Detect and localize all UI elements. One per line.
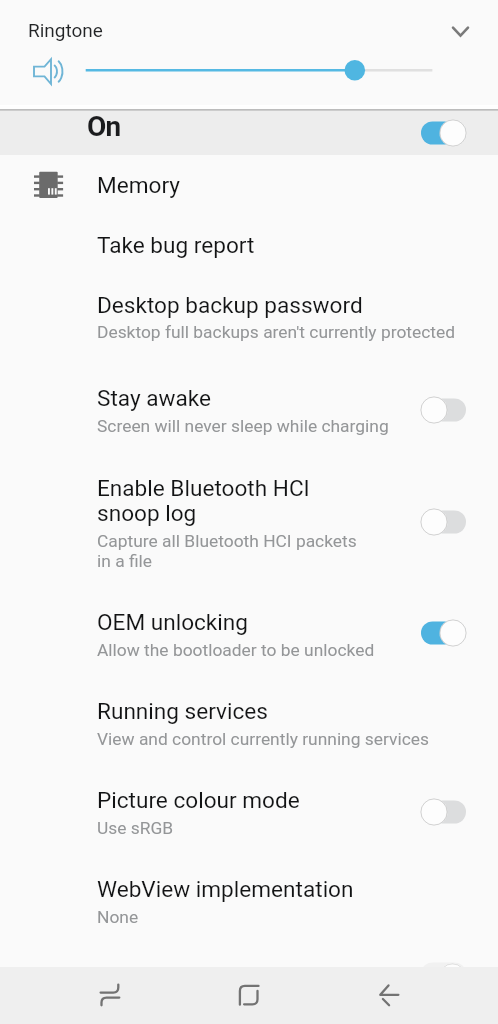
button[interactable]: Enable Bluetooth HCI snoop log [0, 461, 498, 576]
button[interactable]: Collapse [441, 13, 477, 49]
button[interactable]: Home [225, 971, 273, 1019]
staticText: Use sRGB [97, 818, 174, 838]
staticText: OEM unlocking [97, 609, 248, 635]
staticText: None [97, 907, 139, 927]
staticText: On [87, 110, 121, 143]
staticText: Capture all Bluetooth HCI packets in a f… [97, 531, 357, 571]
staticText: Desktop full backups aren't currently pr… [97, 322, 456, 342]
button[interactable]: Stay awake, off [414, 393, 472, 427]
button[interactable]: Picture colour mode [0, 773, 498, 843]
button[interactable]: OEM unlocking [0, 595, 498, 665]
staticText: Memory [97, 172, 180, 198]
staticText: Screen will never sleep while charging [97, 416, 389, 436]
button[interactable]: Developer options, on [414, 116, 472, 150]
button[interactable]: Enable Bluetooth HCI snoop log, off [414, 505, 472, 539]
button[interactable]: WebView implementation [0, 862, 498, 932]
staticText: Allow the bootloader to be unlocked [97, 640, 375, 660]
staticText: View and control currently running servi… [97, 729, 429, 749]
staticText: Running services [97, 698, 268, 724]
staticText: Picture colour mode [97, 787, 300, 813]
button[interactable]: Desktop backup password [0, 278, 498, 348]
staticText: Enable Bluetooth HCI snoop log [97, 475, 310, 527]
staticText: Ringtone [28, 19, 103, 41]
button[interactable]: On [0, 111, 498, 155]
staticText: WebView implementation [97, 876, 354, 902]
staticText: Desktop backup password [97, 292, 363, 318]
button[interactable]: Running services [0, 684, 498, 754]
staticText: Stay awake [97, 385, 211, 411]
button[interactable]: Back [364, 971, 412, 1019]
button[interactable]: Memory [0, 158, 498, 202]
button[interactable]: Take bug report [0, 218, 498, 262]
staticText: Take bug report [97, 232, 255, 258]
button[interactable]: Picture colour mode, off [414, 795, 472, 829]
button[interactable]: Recent apps [86, 971, 134, 1019]
button[interactable]: Stay awake [0, 371, 498, 441]
button[interactable]: OEM unlocking, on [414, 616, 472, 650]
